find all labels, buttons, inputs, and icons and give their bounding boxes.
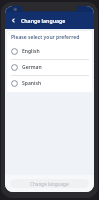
staticText: Change language xyxy=(21,17,66,24)
staticText: Change language xyxy=(30,181,69,187)
button[interactable]: Back xyxy=(8,15,19,26)
staticText: German xyxy=(22,64,42,71)
button[interactable]: English xyxy=(7,44,92,59)
button[interactable]: German xyxy=(7,60,92,75)
staticText: Spanish xyxy=(22,80,42,87)
staticText: Please select your preferred language xyxy=(11,34,89,41)
button[interactable]: Spanish xyxy=(7,76,92,91)
staticText: English xyxy=(22,48,40,55)
button[interactable]: Change language xyxy=(10,179,89,188)
